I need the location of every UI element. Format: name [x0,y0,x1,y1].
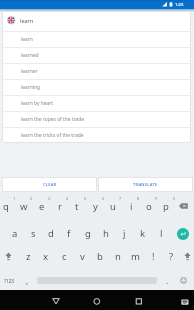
button[interactable] [0,269,19,290]
staticText: c [62,250,67,263]
button[interactable] [2,11,191,31]
button[interactable] [24,221,42,245]
button[interactable] [109,245,127,268]
staticText: learn [20,17,34,24]
staticText: 8 [137,196,140,201]
button[interactable] [5,221,23,245]
button[interactable]: CLEAR [2,177,97,192]
button[interactable] [126,245,144,268]
button[interactable] [55,245,73,268]
staticText: learn [21,36,33,43]
staticText: t [75,200,79,213]
staticText: p [163,200,169,213]
staticText: s [31,227,36,240]
button[interactable] [2,47,191,63]
staticText: h [103,227,109,240]
button[interactable] [69,193,87,219]
staticText: x [43,250,49,263]
button[interactable] [19,245,37,268]
staticText: ? [169,250,174,263]
staticText: e [39,200,45,213]
button[interactable] [135,298,143,305]
button[interactable] [42,221,60,245]
button[interactable] [91,245,109,268]
button[interactable] [162,245,180,268]
staticText: learn the tricks of the trade [21,132,84,139]
staticText: learn by heart [21,100,54,107]
staticText: l [160,227,163,240]
button[interactable] [2,63,191,79]
button[interactable] [122,193,140,219]
button[interactable] [2,79,191,95]
button[interactable] [2,127,191,143]
button[interactable] [181,299,189,306]
staticText: learned [21,52,39,59]
staticText: k [140,227,146,240]
staticText: b [97,250,103,263]
button[interactable] [2,31,191,47]
staticText: d [48,227,54,240]
staticText: ?123 [4,278,14,284]
staticText: learn the ropes of the trade [21,116,85,123]
staticText: y [93,200,98,213]
button[interactable] [158,269,174,290]
staticText: n [115,250,121,263]
staticText: 7 [119,196,122,201]
staticText: TRANSLATE [133,182,158,188]
button[interactable] [97,221,115,245]
staticText: , [26,275,29,286]
button[interactable] [0,193,15,219]
staticText: learning [21,84,41,91]
staticText: 1 [13,196,16,201]
staticText: m [131,250,140,263]
staticText: j [123,227,126,240]
button[interactable] [133,221,151,245]
button[interactable] [152,221,170,245]
button[interactable] [157,193,175,219]
button[interactable] [93,298,101,305]
button[interactable] [73,245,91,268]
staticText: 2 [30,196,33,201]
button[interactable] [37,245,55,268]
button[interactable] [178,202,189,210]
staticText: a [12,227,18,240]
staticText: ! [152,250,155,263]
staticText: 0 [173,196,176,201]
button[interactable] [52,298,60,305]
button[interactable] [15,193,33,219]
staticText: learner [21,68,38,75]
button[interactable]: TRANSLATE [98,177,193,192]
button[interactable] [79,221,97,245]
staticText: CLEAR [43,182,57,188]
button[interactable] [2,111,191,127]
button[interactable] [184,252,191,261]
staticText: 3 [48,196,51,201]
button[interactable] [60,221,78,245]
staticText: 1:23 [175,2,184,8]
staticText: v [80,250,85,263]
button[interactable] [19,269,35,290]
staticText: o [146,200,152,213]
button[interactable] [140,193,158,219]
button[interactable] [144,245,162,268]
button[interactable] [86,193,104,219]
button[interactable] [115,221,133,245]
staticText: 9 [155,196,158,201]
button[interactable] [51,193,69,219]
staticText: w [20,200,28,213]
button[interactable] [5,252,12,261]
button[interactable] [33,193,51,219]
staticText: z [26,250,31,263]
staticText: . [166,275,169,286]
staticText: g [85,227,91,240]
staticText: u [110,200,116,213]
button[interactable] [104,193,122,219]
staticText: 6 [102,196,105,201]
staticText: i [130,200,133,213]
button[interactable] [177,228,189,240]
button[interactable] [2,95,191,111]
staticText: f [67,227,71,240]
button[interactable] [180,277,187,284]
staticText: q [3,200,9,213]
